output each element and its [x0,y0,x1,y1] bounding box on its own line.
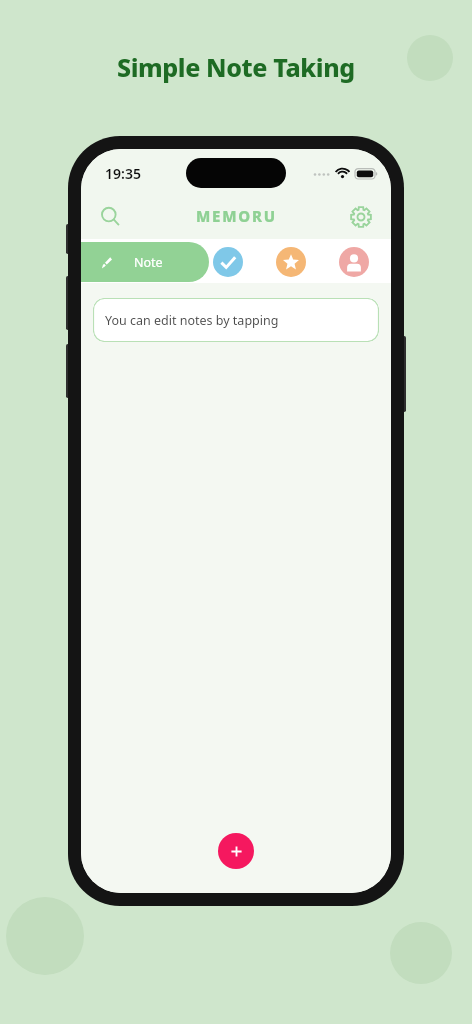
button[interactable]: Tasks [213,247,243,277]
staticText: Simple Note Taking [117,50,355,84]
button[interactable]: You can edit notes by tapping [93,298,379,342]
staticText: You can edit notes by tapping [105,312,279,329]
button[interactable]: Add note [218,833,254,869]
button[interactable]: Settings [339,195,383,239]
staticText: MEMORU [196,206,277,226]
button[interactable]: Favourites [276,247,306,277]
button[interactable]: Note [81,242,209,282]
staticText: Note [134,254,163,271]
staticText: 19:35 [105,164,141,183]
button[interactable]: Search [89,195,133,239]
button[interactable]: Profile [339,247,369,277]
